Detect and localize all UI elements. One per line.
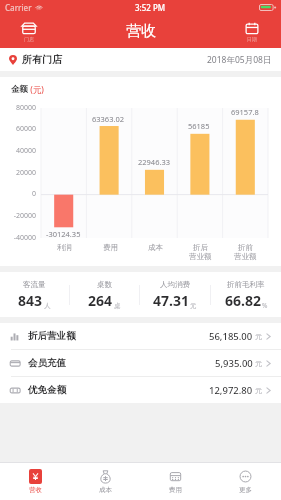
button[interactable]: 更多 <box>210 463 280 500</box>
staticText: 60000 <box>15 124 36 134</box>
button[interactable]: 营收 <box>0 463 70 500</box>
button[interactable]: 折前毛利率 <box>211 272 281 317</box>
staticText: Carrier <box>5 2 32 13</box>
staticText: 利润 <box>57 243 72 252</box>
staticText: 80000 <box>15 103 36 113</box>
staticText: 843 <box>18 291 43 310</box>
staticText: 日期 <box>247 36 257 42</box>
staticText: 3:52 PM <box>135 2 166 13</box>
button[interactable]: 门店 <box>0 15 58 48</box>
staticText: 22946.33 <box>138 157 171 167</box>
staticText: 66.82 <box>225 291 261 310</box>
staticText: 折前 <box>238 243 253 252</box>
button[interactable]: 成本 <box>70 463 140 500</box>
button[interactable]: 会员充值 <box>0 350 281 376</box>
staticText: 264 <box>88 291 113 310</box>
staticText: 折前毛利率 <box>227 280 265 289</box>
button[interactable]: 费用 <box>140 463 210 500</box>
staticText: 5,935.00 <box>215 357 253 370</box>
staticText: 营业额 <box>189 252 212 261</box>
staticText: 47.31 <box>153 291 189 310</box>
staticText: 56,185.00 <box>209 330 253 343</box>
staticText: -20000 <box>13 211 36 221</box>
staticText: 客流量 <box>23 280 46 289</box>
staticText: 折后营业额 <box>28 330 76 342</box>
staticText: 金额 <box>11 84 28 95</box>
staticText: 桌数 <box>97 280 112 289</box>
staticText: 69157.8 <box>231 107 259 117</box>
staticText: 成本 <box>99 486 112 494</box>
staticText: 人均消费 <box>160 280 190 289</box>
staticText: 费用 <box>169 486 182 494</box>
staticText: 营业额 <box>234 252 257 261</box>
staticText: 门店 <box>24 36 34 42</box>
staticText: -40000 <box>13 233 36 243</box>
button[interactable]: 折后营业额 <box>0 323 281 349</box>
staticText: 元 <box>255 386 262 395</box>
button[interactable]: 人均消费 <box>140 272 210 317</box>
staticText: 会员充值 <box>28 357 66 369</box>
staticText: 所有门店 <box>22 53 62 66</box>
staticText: 12,972.80 <box>209 384 253 397</box>
button[interactable]: 优免金额 <box>0 377 281 403</box>
staticText: -30124.35 <box>46 229 81 239</box>
staticText: 桌 <box>114 302 121 310</box>
staticText: 营收 <box>126 22 156 41</box>
staticText: (元) <box>28 84 44 96</box>
staticText: 2018年05月08日 <box>207 54 272 66</box>
staticText: 成本 <box>148 243 163 252</box>
staticText: 折后 <box>193 243 208 252</box>
button[interactable]: 客流量 <box>0 272 69 317</box>
staticText: 人 <box>44 302 51 310</box>
staticText: 56185 <box>188 121 210 131</box>
staticText: 0 <box>31 189 36 199</box>
staticText: 营收 <box>29 486 42 494</box>
button[interactable]: 桌数 <box>70 272 139 317</box>
button[interactable]: 日期 <box>223 15 281 48</box>
staticText: 20000 <box>15 168 36 178</box>
staticText: 优免金额 <box>28 384 66 396</box>
staticText: 更多 <box>239 486 252 494</box>
staticText: 元 <box>190 302 197 310</box>
staticText: 40000 <box>15 146 36 156</box>
staticText: 元 <box>255 359 262 368</box>
button[interactable]: 所有门店 <box>0 48 281 71</box>
staticText: 元 <box>255 332 262 341</box>
staticText: 费用 <box>103 243 118 252</box>
staticText: % <box>262 301 268 310</box>
staticText: 63363.02 <box>92 114 125 124</box>
